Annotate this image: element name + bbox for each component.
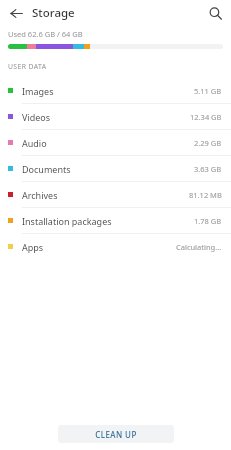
staticText: Archives xyxy=(22,189,58,201)
button[interactable]: Archives xyxy=(0,182,231,207)
button[interactable]: Images xyxy=(0,78,231,103)
staticText: 3.63 GB xyxy=(194,164,222,174)
button[interactable]: Documents xyxy=(0,156,231,181)
staticText: 2.29 GB xyxy=(194,138,222,148)
staticText: USER DATA xyxy=(8,62,47,71)
staticText: Images xyxy=(22,85,54,97)
button[interactable]: Search xyxy=(205,3,225,23)
staticText: Calculating... xyxy=(176,242,222,252)
staticText: Apps xyxy=(22,241,44,253)
staticText: 1.78 GB xyxy=(194,216,222,226)
button[interactable]: Apps xyxy=(0,234,231,259)
staticText: Installation packages xyxy=(22,215,112,227)
staticText: Storage xyxy=(32,5,75,21)
staticText: Used 62.6 GB / 64 GB xyxy=(8,29,83,39)
staticText: 81.12 MB xyxy=(189,190,222,200)
button[interactable]: Installation packages xyxy=(0,208,231,233)
staticText: Audio xyxy=(22,137,47,149)
staticText: 12.34 GB xyxy=(190,112,222,122)
staticText: Documents xyxy=(22,163,71,175)
button[interactable]: Videos xyxy=(0,104,231,129)
button[interactable]: CLEAN UP xyxy=(58,425,174,443)
button[interactable]: Audio xyxy=(0,130,231,155)
staticText: Videos xyxy=(22,111,51,123)
staticText: 5.11 GB xyxy=(194,86,222,96)
staticText: CLEAN UP xyxy=(95,429,137,440)
button[interactable]: Back xyxy=(6,3,26,23)
